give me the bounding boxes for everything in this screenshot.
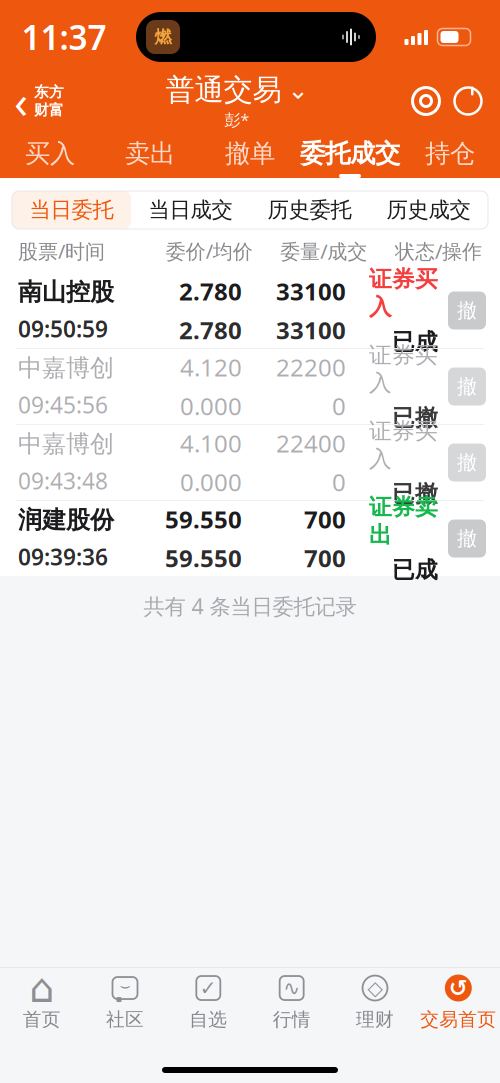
staticText: 中嘉博创 [18, 429, 114, 459]
staticText: ◇ [367, 977, 382, 999]
staticText: 已成 [392, 556, 438, 584]
staticText: 撤 [457, 526, 477, 551]
button[interactable]: 刷新 [452, 85, 484, 117]
staticText: 历史委托 [267, 197, 351, 223]
staticText: 买入 [25, 138, 75, 169]
button[interactable]: 撤单 南山控股 [448, 291, 486, 329]
button[interactable]: ◇ [333, 972, 417, 1032]
button[interactable]: 委托成交 [300, 128, 400, 178]
button[interactable]: ⌂ [0, 972, 83, 1032]
staticText: 状态/操作 [395, 238, 482, 264]
staticText: 2.780 [179, 314, 242, 346]
staticText: 已成 [392, 328, 438, 356]
staticText: 700 [304, 503, 346, 535]
staticText: 已撤 [392, 480, 438, 508]
button[interactable]: 历史成交 [369, 191, 488, 229]
staticText: 09:43:48 [18, 466, 108, 496]
staticText: 持仓 [425, 138, 475, 169]
button[interactable]: 买入 [0, 128, 100, 178]
staticText: 委价/均价 [166, 238, 253, 264]
button[interactable]: ∿ [250, 972, 333, 1032]
staticText: ⌣ [119, 978, 130, 994]
staticText: 证券买入 [369, 417, 438, 473]
button[interactable]: 持仓 [400, 128, 500, 178]
staticText: ⌂ [29, 965, 54, 1011]
button[interactable]: 撤单 [200, 128, 300, 178]
button[interactable]: 普通交易 [165, 74, 308, 128]
staticText: 南山控股 [18, 277, 114, 307]
staticText: 东方 [34, 83, 64, 101]
staticText: 22200 [276, 351, 346, 383]
staticText: 2.780 [179, 275, 242, 307]
staticText: 自选 [189, 1008, 227, 1031]
staticText: 22400 [276, 427, 346, 459]
staticText: 09:50:59 [18, 314, 108, 344]
button[interactable]: 当日成交 [131, 191, 250, 229]
staticText: 股票/时间 [18, 238, 105, 264]
staticText: 共有 4 条当日委托记录 [143, 592, 356, 620]
button[interactable]: 设置 [410, 85, 442, 117]
staticText: 33100 [276, 275, 346, 307]
staticText: 卖出 [125, 138, 175, 169]
staticText: 当日委托 [29, 197, 113, 223]
staticText: 社区 [106, 1008, 144, 1031]
staticText: 交易首页 [420, 1008, 496, 1031]
button[interactable]: 当日委托 [12, 191, 131, 229]
staticText: 0 [332, 390, 346, 422]
staticText: 撤 [457, 450, 477, 475]
staticText: 09:39:36 [18, 542, 108, 572]
staticText: ↺ [449, 975, 468, 1001]
staticText: ⌄ [287, 75, 308, 104]
staticText: ∿ [283, 977, 300, 999]
staticText: 0 [332, 466, 346, 498]
staticText: 59.550 [165, 503, 242, 535]
staticText: 撤单 [225, 138, 275, 169]
staticText: 财富 [34, 101, 64, 119]
staticText: 4.120 [180, 351, 242, 383]
staticText: 0.000 [180, 390, 242, 422]
staticText: 历史成交 [386, 197, 470, 223]
button[interactable]: 撤单 中嘉博创 [448, 443, 486, 481]
staticText: 撤 [457, 374, 477, 399]
staticText: 4.100 [180, 427, 242, 459]
staticText: 委量/成交 [280, 238, 367, 264]
staticText: 中嘉博创 [18, 353, 114, 383]
staticText: 当日成交 [148, 197, 232, 223]
staticText: 证券买入 [369, 341, 438, 397]
staticText: 已撤 [392, 404, 438, 432]
button[interactable]: ⌣ [83, 972, 167, 1032]
staticText: 700 [304, 542, 346, 574]
staticText: 撤 [457, 298, 477, 323]
staticText: 行情 [273, 1008, 311, 1031]
staticText: 0.000 [180, 466, 242, 498]
staticText: 首页 [23, 1008, 61, 1031]
staticText: 09:45:56 [18, 390, 108, 420]
staticText: ✓ [200, 977, 217, 999]
staticText: 彭* [224, 109, 249, 130]
staticText: 燃 [154, 26, 171, 48]
button[interactable]: 撤单 润建股份 [448, 519, 486, 557]
button[interactable]: ↺ [417, 972, 500, 1032]
button[interactable]: 历史委托 [250, 191, 369, 229]
staticText: 33100 [276, 314, 346, 346]
button[interactable]: 卖出 [100, 128, 200, 178]
staticText: 证券卖出 [369, 493, 438, 549]
staticText: 证券买入 [369, 265, 438, 321]
staticText: 润建股份 [18, 505, 114, 535]
button[interactable]: 撤单 中嘉博创 [448, 367, 486, 405]
staticText: 11:37 [21, 15, 106, 59]
staticText: 委托成交 [300, 138, 400, 169]
staticText: 理财 [356, 1008, 394, 1031]
staticText: 59.550 [165, 542, 242, 574]
staticText: ‹ [14, 71, 28, 131]
staticText: 普通交易 [165, 72, 281, 108]
button[interactable]: ✓ [167, 972, 250, 1032]
button[interactable]: 返回 东方财富 [0, 74, 64, 128]
